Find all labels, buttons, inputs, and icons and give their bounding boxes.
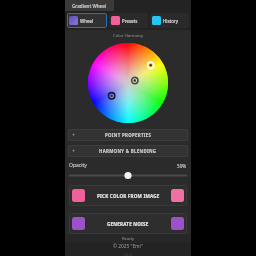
staticText: GENERATE NOISE xyxy=(107,221,149,227)
button[interactable]: PICK COLOR FROM IMAGE xyxy=(69,185,187,206)
button[interactable]: + xyxy=(68,145,188,157)
staticText: + xyxy=(72,132,75,139)
staticText: Ready xyxy=(122,236,135,242)
staticText: Color Harmony xyxy=(65,33,191,39)
button[interactable]: Wheel xyxy=(67,13,107,28)
staticText: © 2025 "Emi" xyxy=(113,243,143,250)
staticText: + xyxy=(72,148,75,155)
button[interactable]: Gradient Wheel xyxy=(65,0,114,11)
staticText: Presets xyxy=(122,18,138,24)
button[interactable]: History xyxy=(150,13,189,28)
staticText: HARMONY & BLENDING xyxy=(99,148,157,154)
staticText: PICK COLOR FROM IMAGE xyxy=(97,193,160,199)
button[interactable]: + xyxy=(68,129,188,141)
staticText: Wheel xyxy=(80,18,94,24)
staticText: v1.0 xyxy=(124,252,132,256)
staticText: 50% xyxy=(177,163,187,169)
button[interactable]: GENERATE NOISE xyxy=(69,213,187,234)
staticText: Opacity xyxy=(69,162,87,169)
staticText: Gradient Wheel xyxy=(72,3,107,9)
button[interactable] xyxy=(69,172,187,179)
staticText: POINT PROPERTIES xyxy=(105,132,152,138)
staticText: History xyxy=(163,18,179,24)
button[interactable]: Presets xyxy=(109,13,148,28)
